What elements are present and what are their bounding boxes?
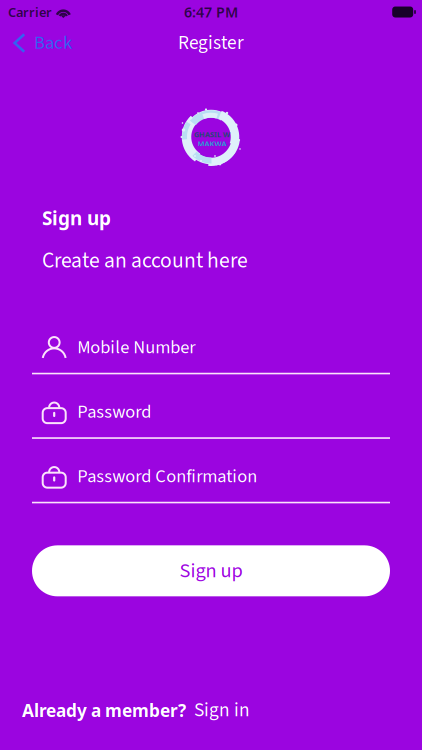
staticText: Back [34,30,72,56]
staticText: Register [178,29,244,57]
staticText: Sign up [179,556,242,585]
staticText: Password [77,399,151,425]
button[interactable]: Sign up [32,545,390,596]
staticText: Carrier [8,3,52,21]
button[interactable]: Back [0,24,82,62]
staticText: Already a member? [22,698,186,722]
staticText: Create an account here [42,245,248,276]
staticText: Sign up [42,205,111,231]
staticText: Mobile Number [77,334,195,361]
staticText: MAKWA [197,138,226,149]
button[interactable]: Sign in [186,696,250,724]
staticText: Sign in [194,696,250,724]
staticText: 6:47 PM [184,2,238,22]
staticText: Password Confirmation [77,463,257,490]
staticText: GHASIL W [194,129,230,139]
